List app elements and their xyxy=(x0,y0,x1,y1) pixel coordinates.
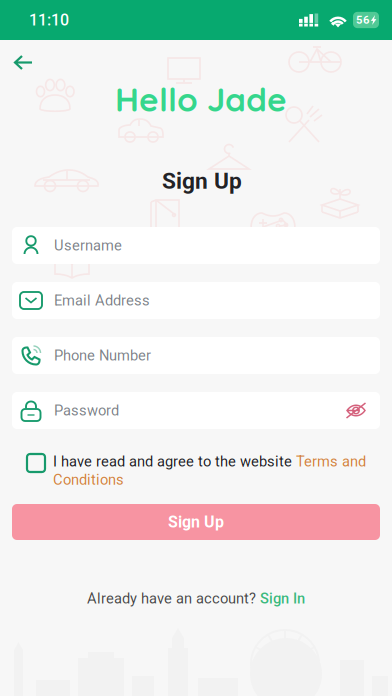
staticText: Phone Number xyxy=(54,347,151,364)
staticText: Conditions xyxy=(53,471,124,488)
staticText: Sign Up xyxy=(168,513,224,531)
button[interactable]: Terms and xyxy=(296,453,366,470)
button[interactable]: Email Address xyxy=(12,282,380,319)
staticText: Password xyxy=(54,402,119,419)
staticText: 56 xyxy=(356,13,370,27)
staticText: Terms and xyxy=(296,453,366,470)
button[interactable]: Sign Up xyxy=(12,504,380,540)
staticText: 11:10 xyxy=(29,11,69,29)
button[interactable]: Conditions xyxy=(53,471,124,488)
button[interactable]: Password xyxy=(12,392,380,429)
button[interactable]: Back xyxy=(4,45,43,80)
button[interactable]: Phone Number xyxy=(12,337,380,374)
staticText: Hello Jade xyxy=(115,78,287,120)
staticText: Email Address xyxy=(54,292,150,309)
staticText: Sign Up xyxy=(162,168,242,194)
staticText: Sign In xyxy=(260,590,305,607)
button[interactable]: Sign In xyxy=(260,590,305,607)
button[interactable]: Agree to terms and conditions xyxy=(27,453,53,472)
staticText: I have read and agree to the website xyxy=(53,453,296,470)
staticText: Username xyxy=(54,237,122,254)
button[interactable]: Username xyxy=(12,227,380,264)
staticText: Already have an account? xyxy=(87,590,260,607)
